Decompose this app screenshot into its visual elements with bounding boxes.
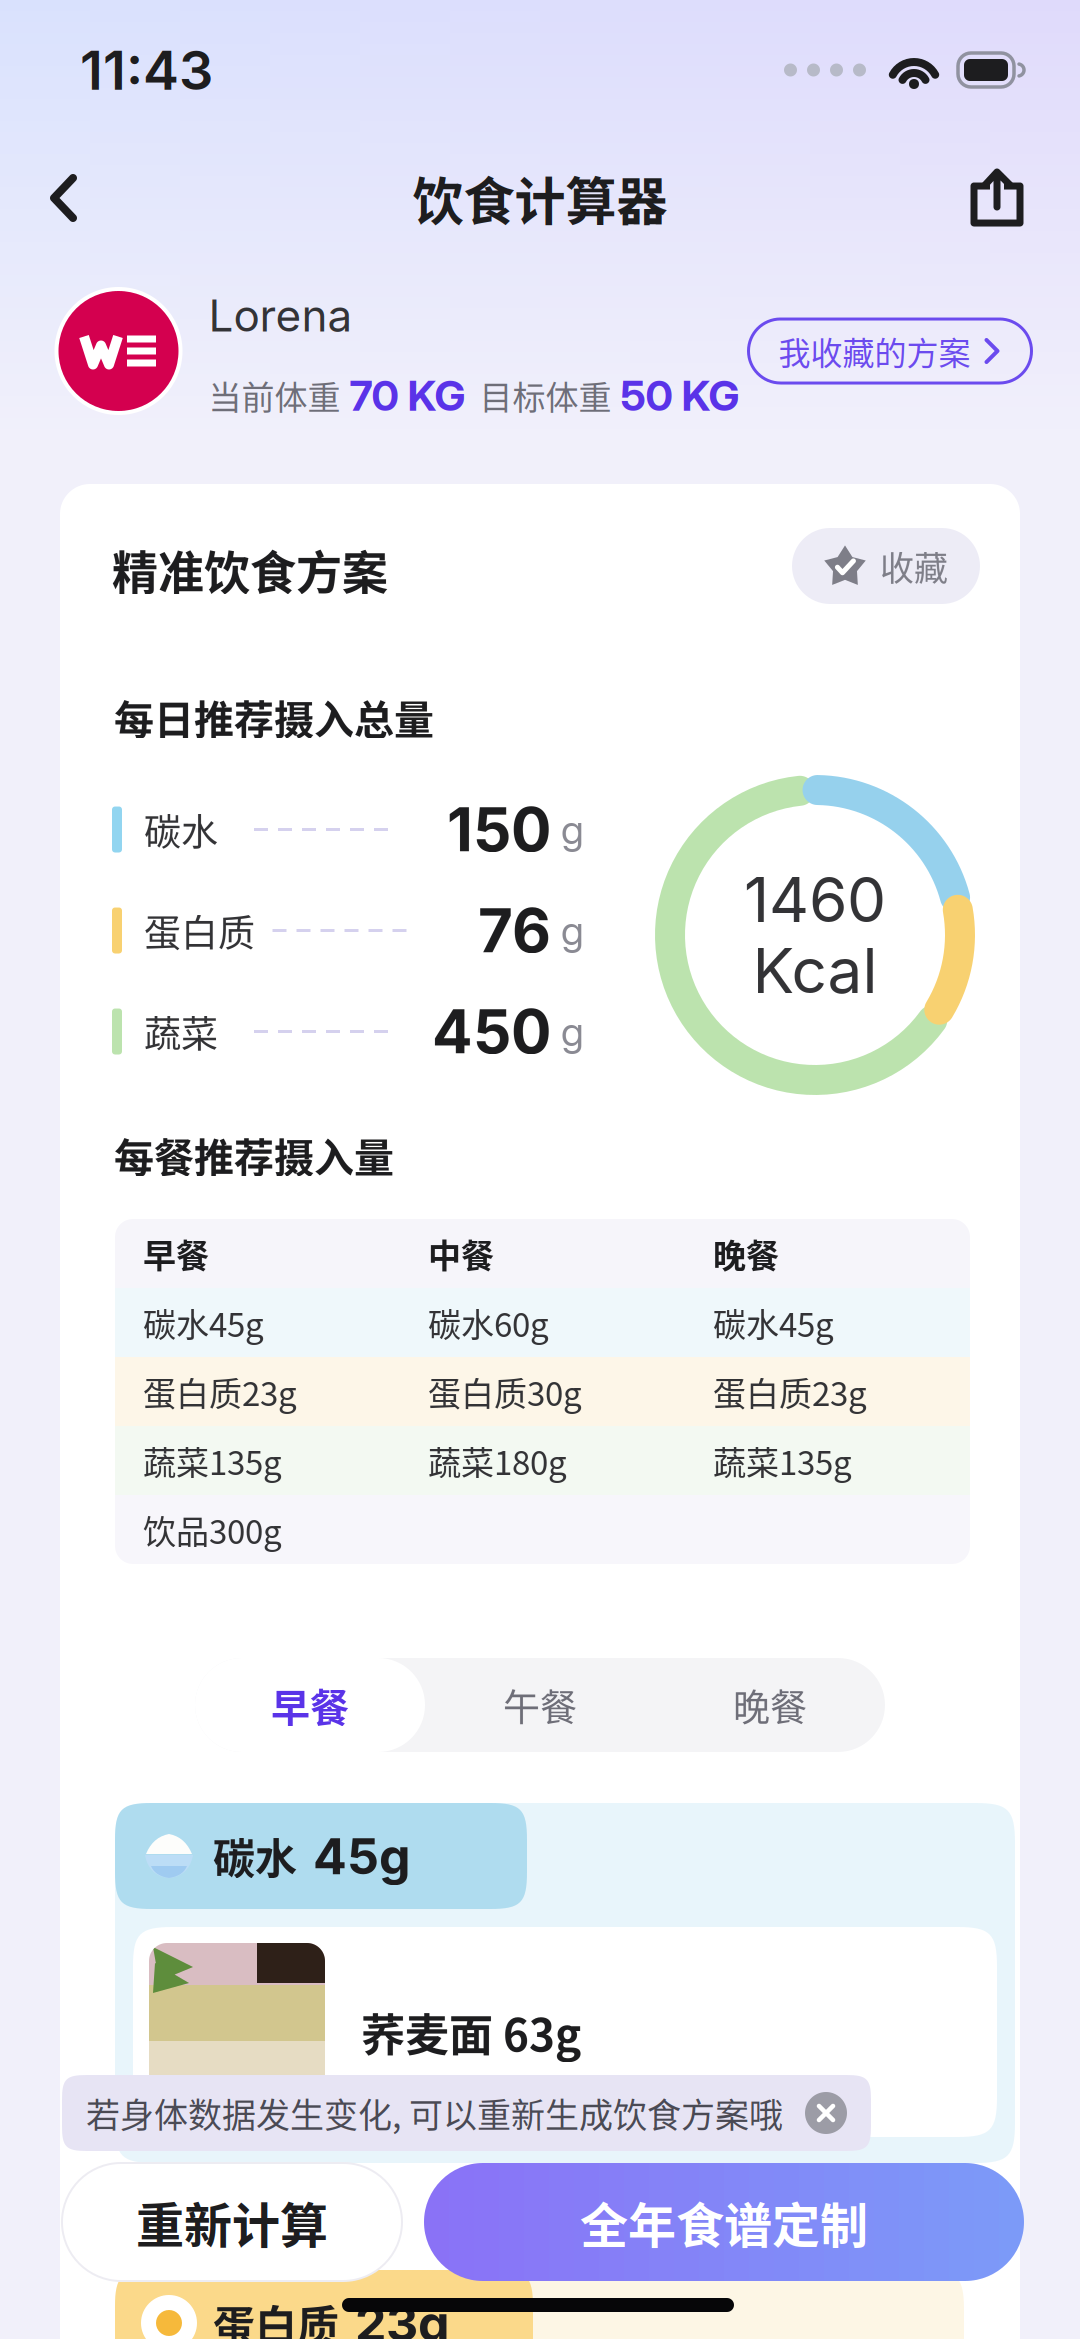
staticText: 11:43	[80, 37, 213, 103]
staticText: Kcal	[752, 933, 877, 1008]
staticText: 当前体重	[208, 371, 340, 419]
staticText: 晚餐	[733, 1678, 807, 1732]
staticText: 碳水45g	[713, 1299, 834, 1346]
staticText: 晚餐	[713, 1230, 779, 1277]
staticText: 1460	[744, 862, 886, 937]
staticText: g	[551, 906, 584, 955]
staticText: 蛋白质	[213, 2293, 339, 2339]
staticText: 150	[447, 793, 551, 866]
staticText: 每餐推荐摄入量	[114, 1126, 394, 1184]
staticText: 70 KG	[340, 370, 465, 421]
button[interactable]: 早餐	[195, 1658, 425, 1752]
button[interactable]: 午餐	[425, 1658, 655, 1752]
button[interactable]: Close tip	[805, 2092, 847, 2134]
button[interactable]: 我收藏的方案	[748, 319, 1031, 383]
staticText: 若身体数据发生变化, 可以重新生成饮食方案哦	[86, 2088, 783, 2138]
staticText: 蛋白质23g	[143, 1368, 297, 1415]
staticText: 精准饮食方案	[112, 536, 388, 603]
staticText: 早餐	[143, 1230, 209, 1277]
staticText: 早餐	[271, 1677, 349, 1733]
staticText: 蔬菜	[144, 1005, 218, 1058]
staticText: 23g	[355, 2293, 450, 2339]
button[interactable]: 收藏	[792, 528, 980, 604]
staticText: g	[551, 1007, 584, 1056]
button[interactable]: 全年食谱定制	[424, 2163, 1024, 2281]
staticText: 蛋白质30g	[428, 1368, 582, 1415]
staticText: 饮品300g	[143, 1506, 282, 1553]
staticText: 蔬菜135g	[143, 1437, 282, 1484]
staticText: g	[551, 805, 584, 854]
button[interactable]: 重新计算	[62, 2163, 402, 2281]
staticText: Lorena	[208, 289, 352, 342]
staticText: 450	[432, 995, 551, 1068]
staticText: 蔬菜135g	[713, 1437, 852, 1484]
staticText: 重新计算	[136, 2187, 328, 2257]
staticText: 蛋白质23g	[713, 1368, 867, 1415]
staticText: 午餐	[503, 1678, 577, 1732]
button[interactable]: 晚餐	[655, 1658, 885, 1752]
staticText: 碳水	[144, 803, 218, 856]
staticText: 蛋白质	[144, 904, 255, 957]
staticText: 50 KG	[611, 370, 739, 421]
staticText: 荞麦面 63g	[361, 2000, 581, 2064]
button[interactable]: Back	[22, 146, 106, 250]
staticText: 我收藏的方案	[778, 328, 970, 374]
staticText: 45g	[313, 1826, 411, 1886]
staticText: 饮食计算器	[412, 161, 667, 235]
staticText: 收藏	[880, 541, 948, 591]
button[interactable]: Share	[952, 151, 1042, 245]
staticText: 碳水	[213, 1826, 297, 1886]
staticText: 每日推荐摄入总量	[114, 688, 434, 746]
staticText: 碳水45g	[143, 1299, 264, 1346]
staticText: 76	[478, 894, 551, 967]
staticText: 碳水60g	[428, 1299, 549, 1346]
staticText: 目标体重	[465, 371, 611, 419]
staticText: 蔬菜180g	[428, 1437, 567, 1484]
staticText: 全年食谱定制	[580, 2187, 868, 2257]
staticText: 中餐	[428, 1230, 494, 1277]
